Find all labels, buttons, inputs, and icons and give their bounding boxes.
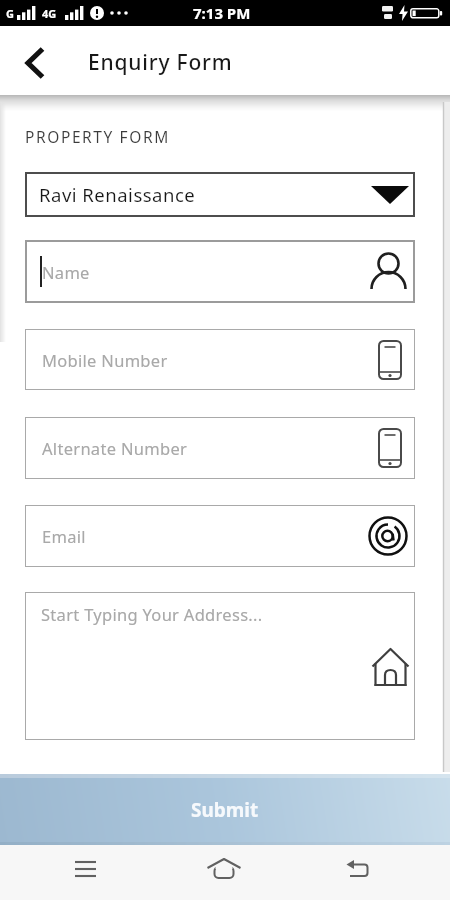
button[interactable] xyxy=(345,858,371,878)
staticText: Enquiry Form xyxy=(88,48,233,77)
button[interactable]: Start Typing Your Address... xyxy=(25,592,415,740)
button[interactable] xyxy=(75,860,96,877)
button[interactable]: Alternate Number xyxy=(25,417,415,479)
staticText: Mobile Number xyxy=(42,349,168,371)
staticText: 4G xyxy=(42,6,57,21)
staticText: G xyxy=(6,6,14,21)
staticText: 7:13 PM xyxy=(193,3,251,23)
button[interactable]: Name xyxy=(25,240,415,303)
button[interactable]: Email xyxy=(25,505,415,567)
button[interactable]: Submit xyxy=(0,774,450,845)
button[interactable] xyxy=(24,47,46,79)
staticText: Submit xyxy=(191,797,259,823)
staticText: Name xyxy=(42,261,90,283)
staticText: Start Typing Your Address... xyxy=(41,603,263,625)
staticText: Email xyxy=(42,525,86,547)
staticText: PROPERTY FORM xyxy=(25,126,170,147)
button[interactable]: Ravi Renaissance xyxy=(25,172,415,217)
staticText: Alternate Number xyxy=(42,437,188,459)
button[interactable] xyxy=(206,857,242,881)
staticText: Ravi Renaissance xyxy=(39,182,196,207)
button[interactable]: Mobile Number xyxy=(25,329,415,390)
